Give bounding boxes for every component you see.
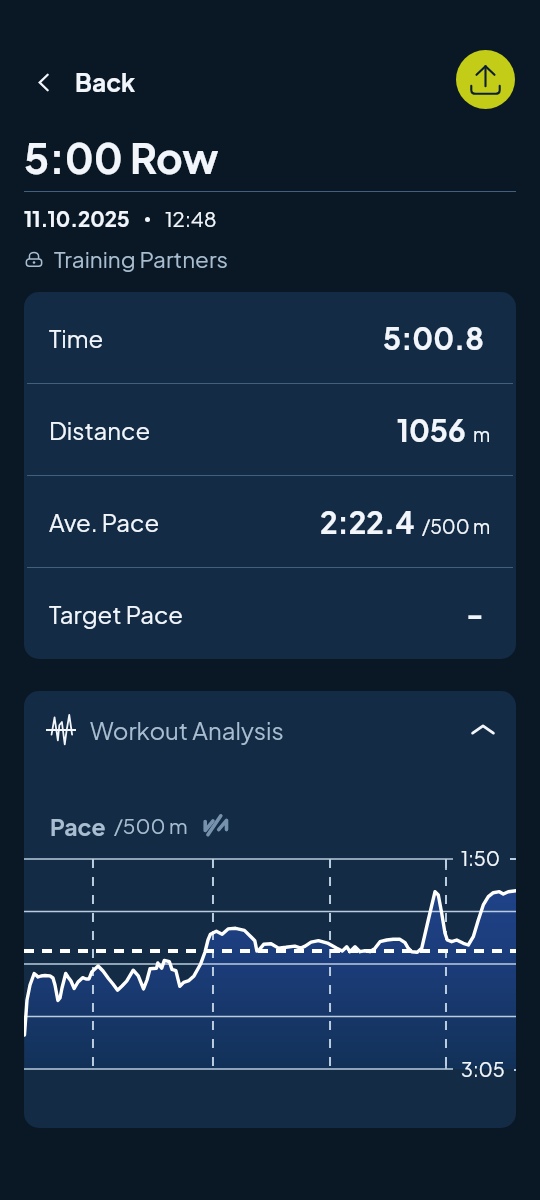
staticText: 2:22.4	[320, 503, 415, 540]
button[interactable]: Training Partners	[22, 245, 239, 273]
staticText: Time	[49, 323, 104, 353]
staticText: 3:05	[461, 1057, 505, 1082]
button[interactable]: Time	[24, 292, 516, 383]
staticText: Back	[75, 67, 136, 98]
button[interactable]: Workout Analysis	[24, 691, 516, 769]
button[interactable]: Share	[456, 50, 515, 109]
staticText: Pace	[50, 812, 106, 841]
staticText: 12:48	[165, 206, 217, 232]
staticText: m	[473, 422, 491, 446]
button[interactable]: Back	[25, 60, 145, 105]
staticText: /500 m	[114, 813, 188, 839]
staticText: 1056	[397, 411, 466, 448]
staticText: Ave. Pace	[49, 507, 160, 537]
button[interactable]: Switch chart metric	[201, 811, 231, 841]
staticText: /500 m	[422, 514, 491, 538]
button[interactable]: Ave. Pace	[24, 476, 516, 567]
staticText: Workout Analysis	[90, 715, 284, 745]
staticText: Training Partners	[54, 245, 229, 273]
staticText: -	[466, 595, 484, 632]
staticText: 5:00.8	[383, 319, 484, 356]
staticText: 1:50	[461, 846, 501, 871]
button[interactable]: Distance	[24, 384, 516, 475]
staticText: Target Pace	[49, 599, 184, 629]
staticText: 5:00 Row	[24, 131, 219, 183]
staticText: Distance	[49, 415, 151, 445]
staticText: 11.10.2025	[24, 206, 130, 232]
button[interactable]: Target Pace	[24, 568, 516, 659]
